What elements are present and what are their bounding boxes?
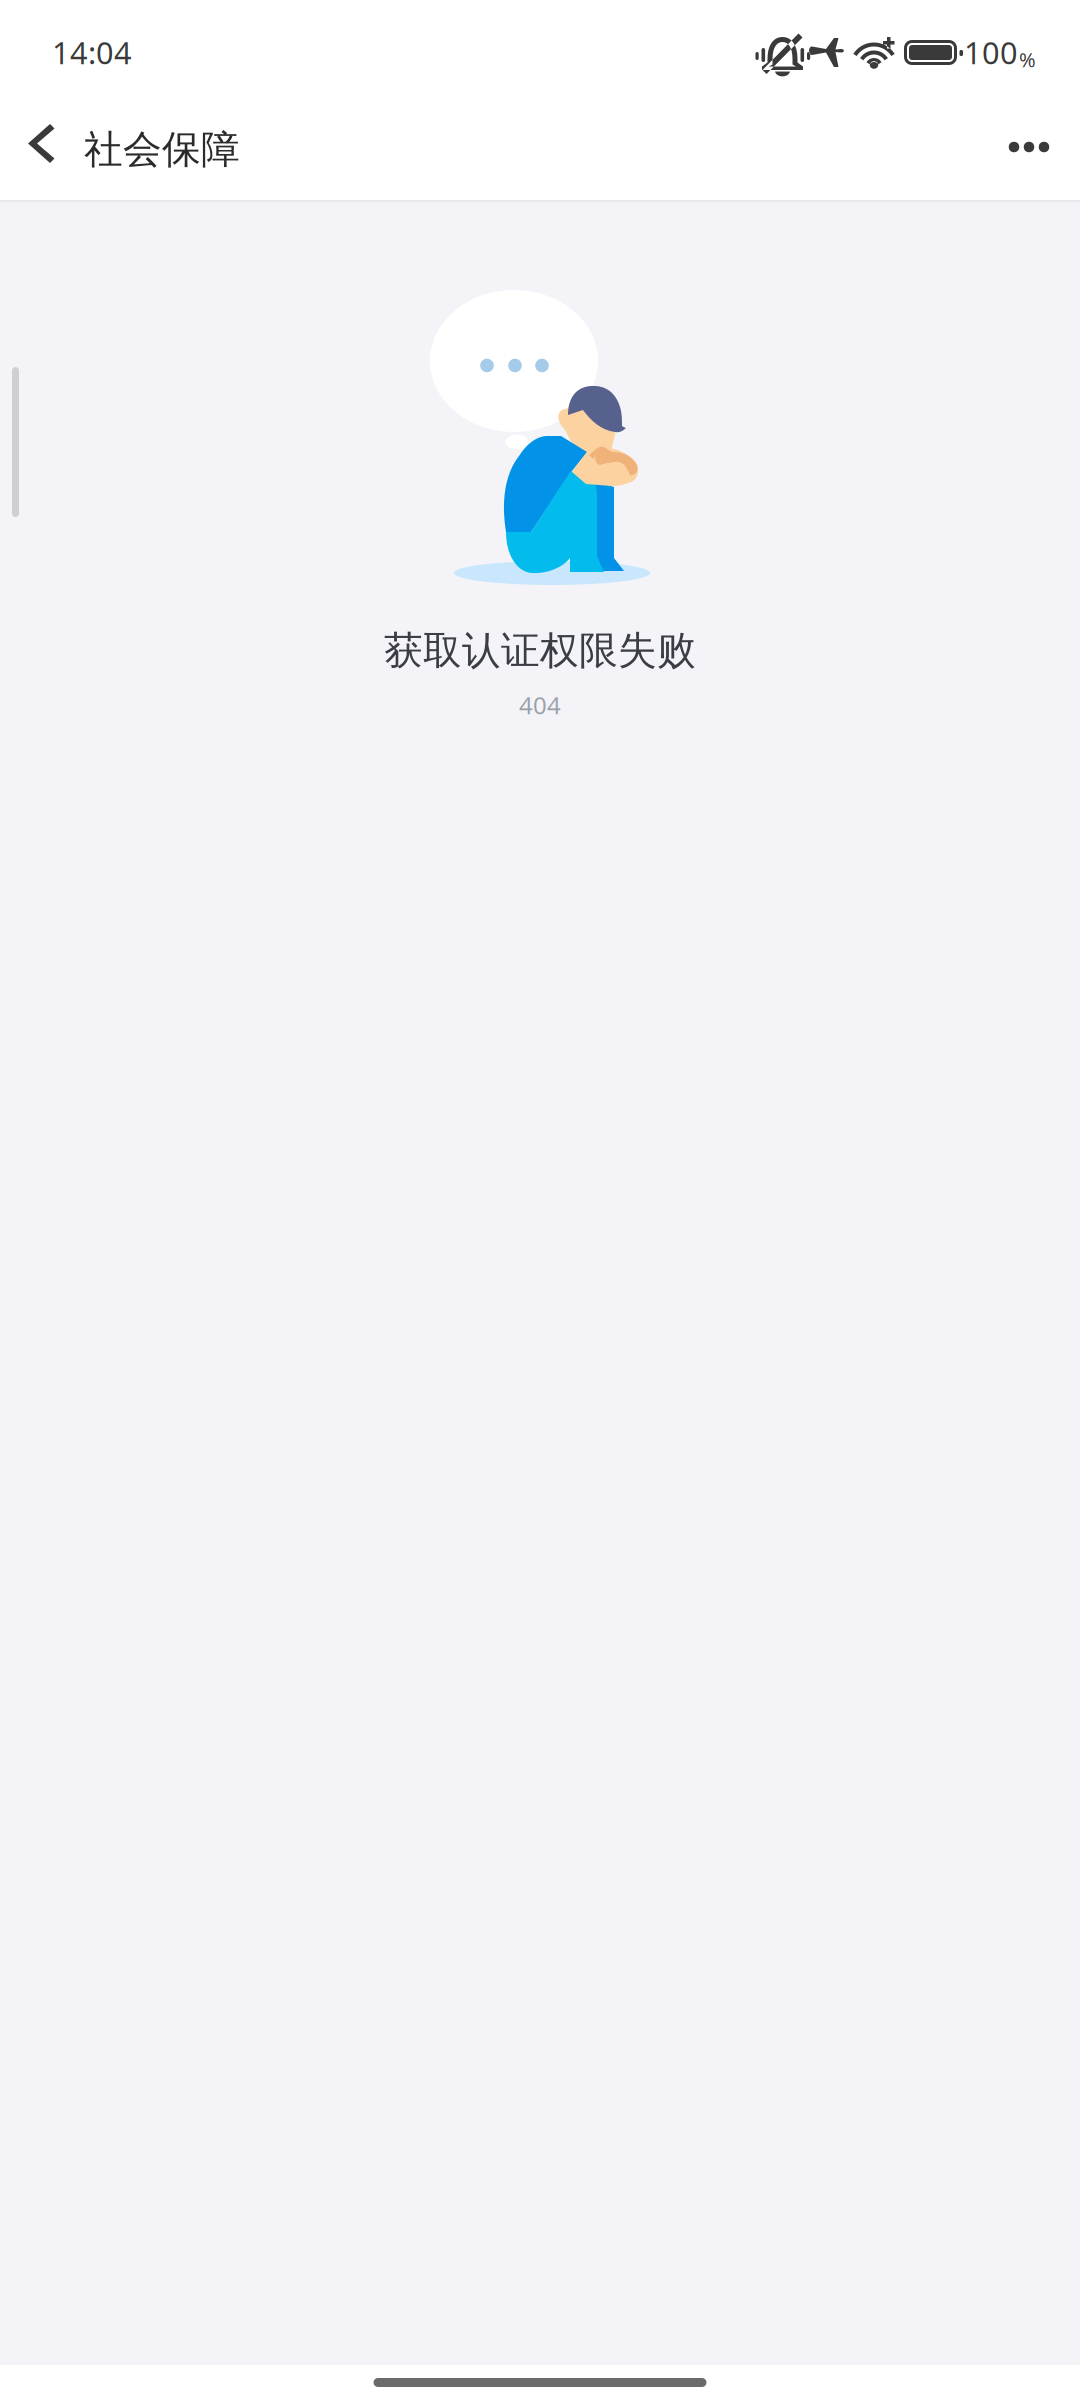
staticText: 100	[964, 32, 1018, 73]
staticText: 404	[519, 689, 561, 721]
staticText: %	[1019, 46, 1036, 73]
staticText: 获取认证权限失败	[384, 627, 696, 674]
button[interactable]: Back	[0, 105, 84, 183]
staticText: 14:04	[52, 32, 132, 73]
staticText: 社会保障	[84, 126, 240, 173]
button[interactable]: More	[986, 108, 1072, 186]
